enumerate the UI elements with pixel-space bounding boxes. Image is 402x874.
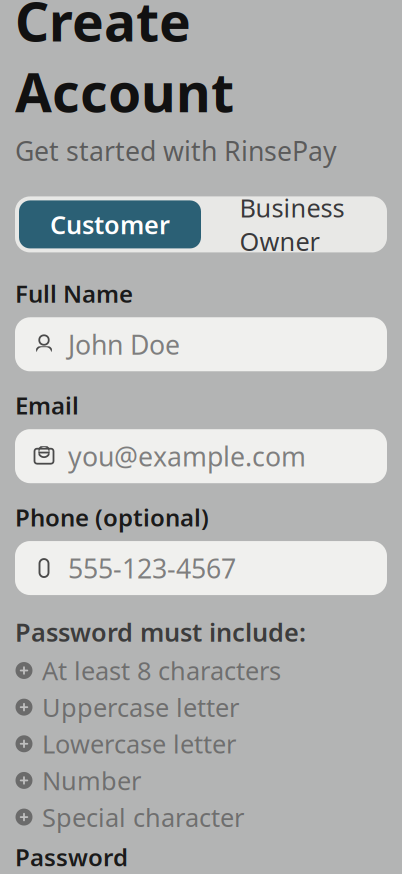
staticText: Create Account <box>15 0 234 127</box>
staticText: Full Name <box>15 277 133 309</box>
button[interactable]: you@example.com <box>15 429 387 483</box>
staticText: Get started with RinsePay <box>15 133 337 168</box>
staticText: 555-123-4567 <box>68 550 236 586</box>
staticText: you@example.com <box>68 438 306 474</box>
button[interactable]: Customer <box>19 200 201 248</box>
staticText: John Doe <box>68 327 180 362</box>
staticText: Password <box>15 841 128 873</box>
staticText: At least 8 characters <box>42 654 281 687</box>
button[interactable]: 555-123-4567 <box>15 541 387 595</box>
staticText: Phone (optional) <box>15 501 209 533</box>
button[interactable]: Business Owner <box>201 200 383 248</box>
staticText: Special character <box>42 800 244 834</box>
staticText: Number <box>42 764 141 797</box>
staticText: Customer <box>50 208 170 241</box>
staticText: Lowercase letter <box>42 727 236 761</box>
staticText: Business Owner <box>239 191 344 258</box>
staticText: Email <box>15 389 79 421</box>
button[interactable]: John Doe <box>15 317 387 371</box>
staticText: Password must include: <box>15 615 306 649</box>
staticText: Uppercase letter <box>42 690 239 724</box>
